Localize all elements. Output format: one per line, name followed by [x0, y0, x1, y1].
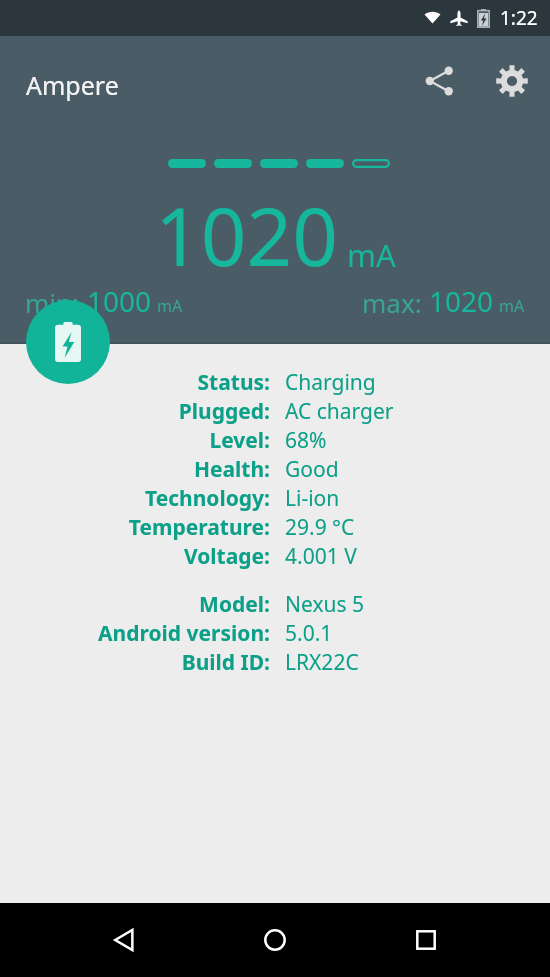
staticText: min: — [25, 285, 80, 320]
button[interactable]: Settings — [488, 57, 536, 105]
staticText: Status: — [197, 368, 270, 397]
staticText: Model: — [199, 590, 270, 619]
button[interactable]: Health: — [0, 455, 550, 484]
staticText: 29.9 °C — [285, 513, 355, 542]
staticText: mA — [157, 295, 183, 317]
staticText: Ampere — [26, 68, 119, 102]
staticText: Good — [285, 455, 339, 484]
staticText: Nexus 5 — [285, 590, 365, 619]
staticText: Level: — [209, 426, 270, 455]
button[interactable]: Plugged: — [0, 397, 550, 426]
staticText: 1020 — [429, 282, 494, 320]
staticText: Li-ion — [285, 484, 340, 513]
button[interactable]: Level: — [0, 426, 550, 455]
button[interactable]: Home — [251, 903, 299, 977]
staticText: mA — [499, 295, 525, 317]
staticText: AC charger — [285, 397, 394, 426]
staticText: Voltage: — [183, 542, 270, 571]
staticText: Plugged: — [178, 397, 270, 426]
button[interactable]: Technology: — [0, 484, 550, 513]
button[interactable]: Recents — [402, 903, 450, 977]
staticText: 1:22 — [500, 5, 538, 31]
staticText: LRX22C — [285, 648, 359, 677]
staticText: max: — [362, 285, 422, 320]
staticText: 68% — [285, 426, 327, 455]
staticText: 1000 — [87, 282, 152, 320]
staticText: 5.0.1 — [285, 619, 333, 648]
staticText: Android version: — [98, 619, 270, 648]
button[interactable]: Android version: — [0, 619, 550, 648]
button[interactable]: Voltage: — [0, 542, 550, 571]
staticText: 4.001 V — [285, 542, 357, 571]
button[interactable]: Status: — [0, 368, 550, 397]
staticText: Technology: — [145, 484, 270, 513]
button[interactable]: Battery charging — [26, 300, 110, 384]
staticText: Charging — [285, 368, 376, 397]
button[interactable]: Share — [416, 57, 464, 105]
staticText: 1020 — [155, 180, 339, 289]
button[interactable]: Temperature: — [0, 513, 550, 542]
staticText: Temperature: — [128, 513, 270, 542]
staticText: Health: — [193, 455, 270, 484]
button[interactable]: Back — [100, 903, 148, 977]
button[interactable]: Model: — [0, 590, 550, 619]
staticText: Build ID: — [181, 648, 270, 677]
button[interactable]: Build ID: — [0, 648, 550, 677]
staticText: mA — [347, 234, 396, 276]
